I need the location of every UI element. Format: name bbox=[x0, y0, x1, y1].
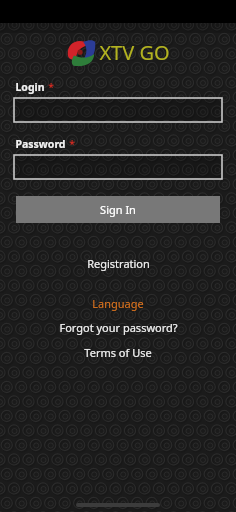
button[interactable]: Terms of Use bbox=[0, 345, 236, 360]
staticText: Password bbox=[15, 137, 66, 151]
staticText: * bbox=[69, 137, 75, 151]
button[interactable]: Language bbox=[0, 296, 236, 311]
staticText: Registration bbox=[87, 256, 150, 271]
staticText: Terms of Use bbox=[84, 345, 152, 360]
staticText: Login bbox=[15, 80, 45, 94]
button[interactable]: Registration bbox=[0, 256, 236, 271]
staticText: XTV GO bbox=[99, 39, 170, 66]
staticText: Language bbox=[92, 296, 144, 311]
button[interactable]: Login input bbox=[14, 98, 222, 122]
button[interactable]: Sign In bbox=[16, 196, 220, 223]
staticText: Sign In bbox=[100, 202, 136, 217]
button[interactable]: Password input bbox=[14, 155, 222, 179]
staticText: * bbox=[48, 80, 54, 94]
button[interactable]: Forgot your password? bbox=[0, 320, 236, 335]
staticText: Forgot your password? bbox=[59, 320, 178, 335]
